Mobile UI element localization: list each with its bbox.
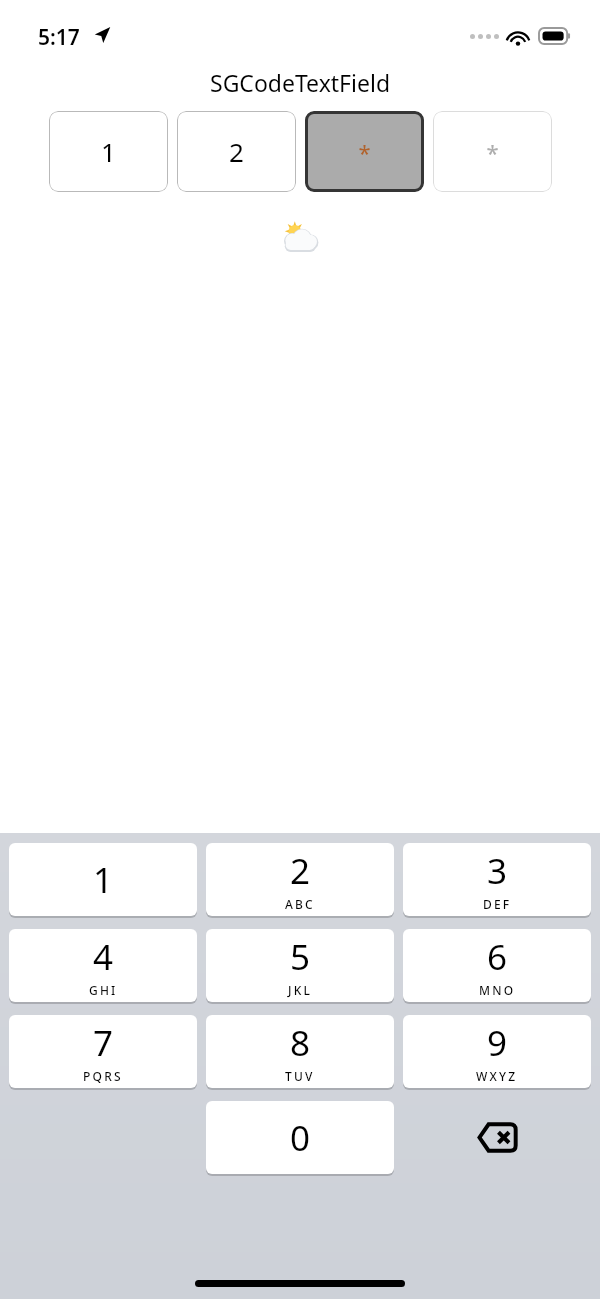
staticText: 8 [290, 1019, 311, 1067]
button[interactable]: 0 [206, 1101, 394, 1174]
staticText: MNO [479, 982, 516, 998]
button[interactable]: * [433, 111, 552, 192]
button[interactable]: 7 [9, 1015, 197, 1088]
staticText: 1 [93, 856, 114, 904]
staticText: 5 [290, 933, 311, 981]
staticText: * [358, 137, 371, 167]
button[interactable]: 4 [9, 929, 197, 1002]
button[interactable]: Backspace [403, 1101, 591, 1174]
staticText: PQRS [83, 1068, 123, 1084]
button[interactable]: 9 [403, 1015, 591, 1088]
button[interactable]: 1 [9, 843, 197, 916]
staticText: * [486, 137, 499, 167]
staticText: DEF [483, 896, 512, 912]
staticText: 7 [93, 1019, 114, 1067]
button[interactable]: 2 [177, 111, 296, 192]
button[interactable]: 6 [403, 929, 591, 1002]
staticText: WXYZ [476, 1068, 518, 1084]
button[interactable]: 3 [403, 843, 591, 916]
button[interactable]: * [305, 111, 424, 192]
staticText: 4 [93, 933, 114, 981]
staticText: 2 [290, 847, 311, 895]
staticText: 9 [487, 1019, 508, 1067]
button[interactable]: 5 [206, 929, 394, 1002]
staticText: 0 [290, 1114, 311, 1162]
button[interactable]: 8 [206, 1015, 394, 1088]
staticText: 1 [101, 134, 116, 169]
staticText: 5:17 [38, 23, 80, 52]
staticText: GHI [89, 982, 118, 998]
staticText: JKL [288, 982, 313, 998]
staticText: ABC [285, 896, 315, 912]
button[interactable]: 1 [49, 111, 168, 192]
staticText: 6 [487, 933, 508, 981]
staticText: TUV [285, 1068, 315, 1084]
button[interactable]: 2 [206, 843, 394, 916]
staticText: 2 [229, 134, 244, 169]
staticText: 3 [487, 847, 508, 895]
staticText: SGCodeTextField [210, 67, 391, 98]
